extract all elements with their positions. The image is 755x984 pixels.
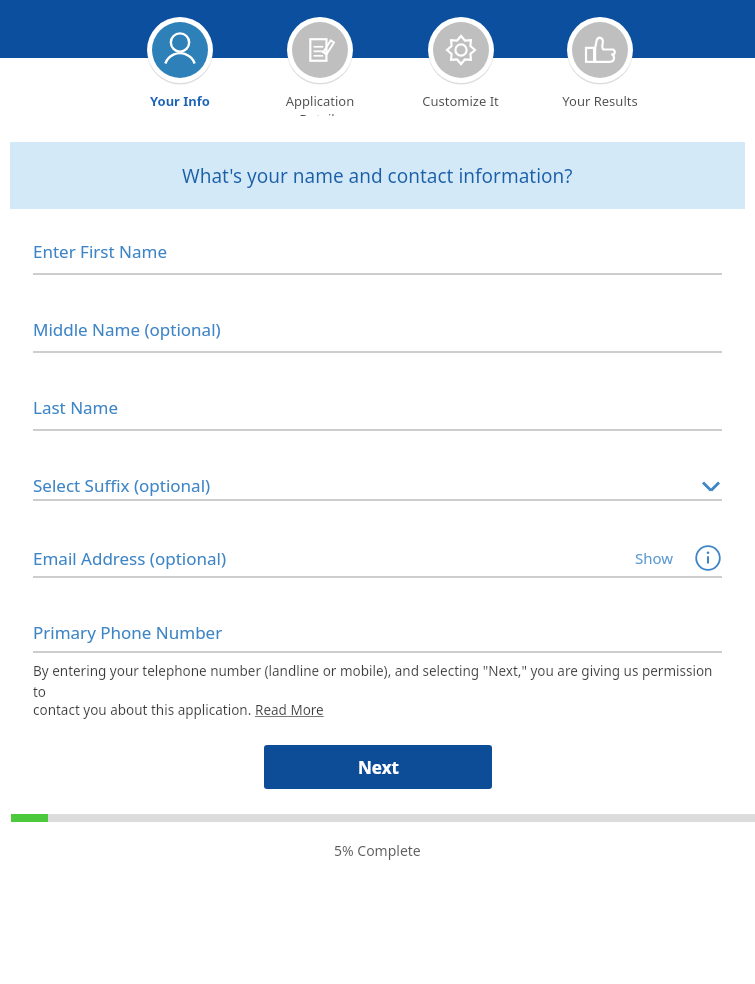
button[interactable]: Application Details [268, 16, 372, 116]
button[interactable]: Select suffix dropdown [0, 474, 755, 501]
staticText: Last Name [33, 396, 119, 419]
staticText: Primary Phone Number [33, 621, 223, 644]
staticText: 5% Complete [334, 841, 421, 860]
staticText: Next [358, 756, 399, 779]
button[interactable]: Your Info [128, 16, 232, 116]
button[interactable]: Show [631, 548, 678, 568]
staticText: Email Address (optional) [33, 547, 227, 570]
button[interactable]: Customize It [408, 16, 512, 116]
button[interactable]: Middle Name (optional) [0, 318, 755, 353]
button[interactable]: Next [264, 745, 492, 789]
button[interactable]: Primary Phone Number [0, 621, 755, 653]
button[interactable]: Email Address (optional) [33, 547, 631, 570]
button[interactable]: More information [694, 544, 722, 572]
staticText: Read More [255, 701, 324, 719]
button[interactable]: Last Name [0, 396, 755, 431]
staticText: Application Details [268, 92, 372, 116]
button[interactable]: Enter First Name [0, 240, 755, 275]
staticText: Middle Name (optional) [33, 318, 221, 341]
staticText: Your Results [562, 92, 638, 110]
button[interactable]: Your Results [548, 16, 652, 116]
staticText: What's your name and contact information… [182, 163, 573, 189]
staticText: By entering your telephone number (landl… [33, 662, 722, 701]
staticText: Select Suffix (optional) [33, 474, 211, 497]
staticText: contact you about this application. [33, 701, 255, 719]
staticText: Enter First Name [33, 240, 167, 263]
staticText: Show [635, 548, 674, 568]
staticText: Customize It [422, 92, 499, 110]
staticText: Your Info [150, 92, 210, 110]
button[interactable]: Read More [255, 701, 324, 719]
